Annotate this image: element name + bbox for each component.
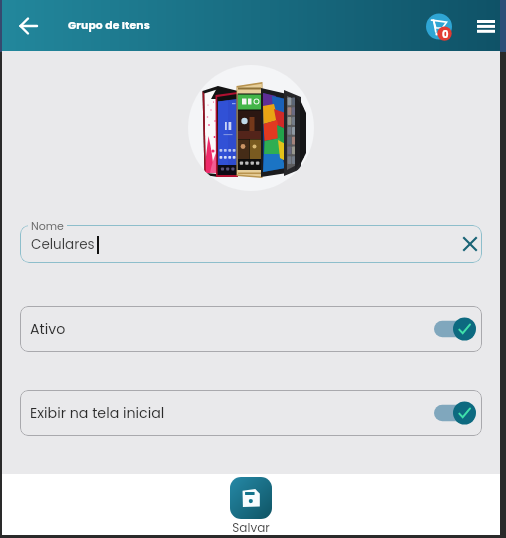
- button[interactable]: Ativo: [20, 306, 482, 352]
- button[interactable]: Clear: [458, 232, 482, 256]
- button[interactable]: Shopping cart: [426, 11, 456, 41]
- button[interactable]: Back: [15, 12, 43, 40]
- staticText: Salvar: [232, 519, 270, 535]
- button[interactable]: Salvar: [208, 474, 294, 535]
- button[interactable]: Celulares: [20, 225, 482, 263]
- button[interactable]: Menu: [473, 13, 499, 39]
- staticText: Grupo de Itens: [68, 18, 150, 33]
- button[interactable]: Exibir na tela inicial: [20, 390, 482, 436]
- staticText: Ativo: [30, 319, 434, 339]
- staticText: Exibir na tela inicial: [30, 403, 434, 423]
- staticText: Celulares: [31, 235, 95, 254]
- staticText: Nome: [31, 218, 64, 233]
- staticText: 0: [442, 27, 449, 41]
